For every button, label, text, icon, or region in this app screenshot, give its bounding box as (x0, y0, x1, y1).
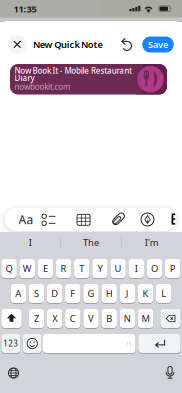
staticText: H (106, 287, 113, 300)
button[interactable]: L (156, 283, 171, 303)
staticText: Q (6, 262, 13, 275)
staticText: K (142, 287, 148, 300)
button[interactable]: C (65, 308, 80, 328)
staticText: U (115, 262, 122, 275)
button[interactable]: U (110, 258, 126, 278)
button[interactable]: Emoji (23, 333, 42, 353)
button[interactable]: G (83, 283, 99, 303)
staticText: nowbookit.com (14, 81, 70, 92)
staticText: I (135, 262, 138, 275)
staticText: G (87, 287, 94, 300)
button[interactable]: F (65, 283, 80, 303)
button[interactable]: B (101, 308, 117, 328)
staticText: F (70, 287, 75, 300)
staticText: 11:35 (13, 3, 36, 15)
button[interactable]: Dictate (162, 365, 178, 381)
staticText: The (83, 236, 99, 249)
staticText: B (106, 312, 112, 325)
staticText: X (52, 312, 57, 325)
button[interactable]: X (47, 308, 62, 328)
staticText: W (23, 262, 32, 275)
button[interactable]: M (138, 308, 153, 328)
button[interactable]: Delete (160, 308, 181, 328)
staticText: I'm (145, 236, 159, 249)
staticText: D (51, 287, 58, 300)
button[interactable]: Close (8, 35, 27, 54)
button[interactable]: Y (92, 258, 108, 278)
button[interactable]: Save (142, 36, 174, 52)
button[interactable]: D (47, 283, 62, 303)
staticText: I (29, 236, 32, 249)
button[interactable]: K (138, 283, 153, 303)
staticText: R (61, 262, 67, 275)
button[interactable]: R (56, 258, 71, 278)
staticText: 123 (3, 338, 18, 349)
button[interactable]: N (120, 308, 135, 328)
button[interactable]: Checklist (39, 209, 59, 230)
button[interactable]: I (129, 258, 144, 278)
staticText: L (161, 287, 166, 300)
button[interactable]: Undo (119, 37, 134, 52)
button[interactable]: Next keyboard (5, 365, 21, 381)
button[interactable]: Return (138, 333, 181, 353)
staticText: Z (34, 312, 39, 325)
button[interactable]: I (2, 234, 58, 250)
button[interactable]: Q (1, 258, 17, 278)
staticText: S (34, 287, 39, 300)
staticText: Aa (18, 212, 33, 228)
staticText: New Quick Note (33, 38, 102, 51)
staticText: V (88, 312, 94, 325)
staticText: Save (148, 38, 168, 51)
staticText: 15 (125, 340, 131, 347)
staticText: M (141, 312, 149, 325)
button[interactable]: W (20, 258, 35, 278)
button[interactable]: Shift (1, 308, 22, 328)
staticText: Now Book It - Mobile Restaurant (14, 65, 132, 76)
button[interactable]: V (83, 308, 99, 328)
button[interactable]: 123 (1, 333, 20, 353)
button[interactable]: O (147, 258, 162, 278)
button[interactable]: Format (16, 209, 36, 230)
button[interactable]: The (63, 234, 119, 250)
button[interactable]: I'm (124, 234, 180, 250)
button[interactable]: P (165, 258, 180, 278)
staticText: Diary (14, 72, 34, 83)
staticText: N (124, 312, 131, 325)
button[interactable]: E (38, 258, 53, 278)
staticText: Y (97, 262, 102, 275)
staticText: A (15, 287, 21, 300)
button[interactable]: Z (29, 308, 44, 328)
staticText: E (43, 262, 48, 275)
button[interactable]: Now Book It - Mobile Restaurant (10, 64, 167, 94)
button[interactable]: J (120, 283, 135, 303)
button[interactable]: Markup (137, 209, 157, 230)
button[interactable]: S (29, 283, 44, 303)
staticText: T (79, 262, 84, 275)
staticText: P (170, 262, 176, 275)
button[interactable]: T (74, 258, 89, 278)
staticText: C (70, 312, 76, 325)
staticText: O (151, 262, 158, 275)
staticText: J (126, 287, 129, 300)
button[interactable]: Table (73, 209, 93, 230)
button[interactable]: H (101, 283, 117, 303)
button[interactable]: Space (43, 333, 135, 353)
button[interactable]: Attach (108, 209, 128, 230)
button[interactable]: A (11, 283, 26, 303)
